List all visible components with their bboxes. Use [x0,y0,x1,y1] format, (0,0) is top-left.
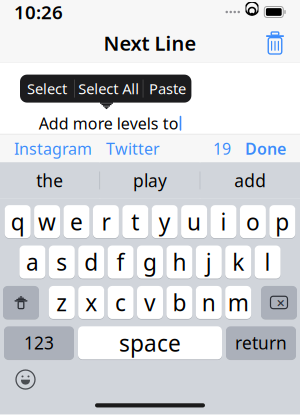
button[interactable]: t [122,204,148,239]
button[interactable]: b [166,285,192,320]
button[interactable]: 19 [213,131,231,166]
button[interactable]: play [100,162,200,198]
staticText: the [36,169,63,192]
staticText: n [202,287,216,317]
staticText: r [101,207,110,237]
button[interactable]: Emoji keyboard [8,362,43,397]
button[interactable]: return [226,326,296,360]
button[interactable]: v [137,285,163,320]
button[interactable]: space [78,326,222,360]
button[interactable]: Delete [261,285,297,320]
staticText: y [159,207,171,237]
button[interactable]: r [93,204,119,239]
staticText: play [133,169,167,192]
staticText: 10:26 [14,0,63,24]
button[interactable]: p [269,204,295,239]
button[interactable]: e [63,204,89,239]
staticText: p [275,207,289,237]
button[interactable]: k [225,245,251,279]
button[interactable]: i [210,204,236,239]
button[interactable]: add [200,162,300,198]
staticText: z [56,287,67,317]
button[interactable]: the [0,162,99,198]
button[interactable]: Delete [256,26,294,60]
button[interactable]: Paste [143,75,191,103]
staticText: h [172,247,186,277]
staticText: × [276,293,284,312]
button[interactable]: g [137,245,163,279]
staticText: 123 [24,331,54,354]
staticText: a [26,247,39,277]
button[interactable]: y [152,204,178,239]
staticText: e [70,207,83,237]
button[interactable]: Twitter [92,131,160,166]
staticText: space [119,328,181,358]
staticText: 19 [213,138,231,159]
staticText: Select All [78,79,139,98]
button[interactable]: w [34,204,60,239]
staticText: Add more levels to [39,113,179,134]
staticText: c [115,287,126,317]
button[interactable]: d [78,245,104,279]
button[interactable]: Shift [3,285,39,320]
staticText: g [143,247,157,277]
staticText: o [246,207,260,237]
staticText: s [56,247,67,277]
button[interactable]: x [78,285,104,320]
button[interactable]: Instagram [14,131,92,166]
button[interactable]: a [19,245,45,279]
button[interactable]: c [108,285,134,320]
button[interactable]: z [49,285,75,320]
button[interactable]: n [196,285,222,320]
button[interactable]: o [240,204,266,239]
button[interactable]: s [49,245,75,279]
staticText: Select [27,79,67,98]
staticText: f [117,247,125,277]
staticText: Instagram [14,138,92,159]
button[interactable]: h [166,245,192,279]
button[interactable]: q [5,204,31,239]
staticText: Twitter [106,138,160,159]
button[interactable]: Select All [75,75,143,103]
staticText: Next Line [103,30,196,56]
staticText: j [206,247,212,277]
staticText: d [84,247,98,277]
staticText: u [187,207,201,237]
staticText: b [172,287,186,317]
button[interactable]: Select [20,75,74,103]
staticText: q [11,207,25,237]
button[interactable]: Done [231,131,286,166]
button[interactable]: 123 [4,326,74,360]
staticText: l [265,247,271,277]
button[interactable]: l [255,245,281,279]
staticText: i [220,207,226,237]
staticText: w [38,207,56,237]
button[interactable]: f [108,245,134,279]
staticText: Done [245,138,286,159]
staticText: Paste [149,79,186,98]
staticText: m [228,287,249,317]
button[interactable]: m [225,285,251,320]
staticText: return [235,331,287,354]
staticText: t [131,207,139,237]
staticText: k [232,247,244,277]
staticText: add [234,169,266,192]
staticText: v [144,287,156,317]
button[interactable]: j [196,245,222,279]
button[interactable]: u [181,204,207,239]
staticText: x [85,287,97,317]
